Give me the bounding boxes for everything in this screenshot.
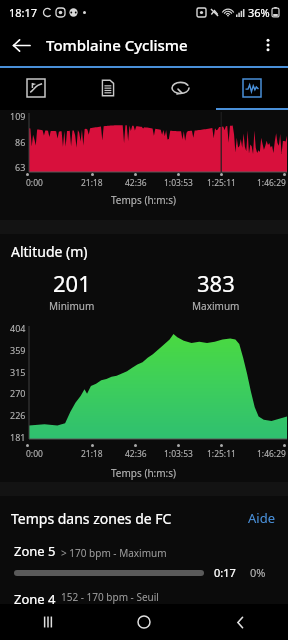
button[interactable]: Back <box>0 24 42 66</box>
staticText: Temps (h:m:s) <box>111 193 177 207</box>
staticText: 1:46:29 <box>257 448 286 460</box>
staticText: 0:00 <box>26 448 43 460</box>
staticText: 21:18 <box>81 177 103 189</box>
button[interactable]: Home <box>96 604 192 640</box>
staticText: 42:36 <box>125 448 147 460</box>
button[interactable]: More options <box>248 25 288 65</box>
staticText: 0:00 <box>26 177 43 189</box>
staticText: 270 <box>10 387 26 399</box>
staticText: 1:03:53 <box>164 448 193 460</box>
staticText: 36% <box>248 5 270 20</box>
button[interactable]: Details <box>72 68 144 108</box>
staticText: 1:03:53 <box>164 177 193 189</box>
staticText: 201 <box>53 268 91 298</box>
staticText: 404 <box>10 322 26 334</box>
button[interactable]: Back <box>192 604 288 640</box>
staticText: 1:25:11 <box>207 448 236 460</box>
staticText: 21:18 <box>81 448 103 460</box>
button[interactable]: Aide <box>246 507 277 529</box>
staticText: 18:17 <box>9 5 38 20</box>
staticText: 383 <box>197 268 235 298</box>
button[interactable]: Charts <box>216 68 288 108</box>
staticText: 86 <box>15 136 26 148</box>
staticText: Aide <box>248 509 275 527</box>
staticText: 359 <box>10 344 26 356</box>
staticText: Temps (h:m:s) <box>111 466 177 480</box>
staticText: 0% <box>250 565 266 580</box>
button[interactable]: Laps <box>144 68 216 108</box>
staticText: 315 <box>10 366 26 378</box>
staticText: 1:46:29 <box>257 177 286 189</box>
staticText: Maximum <box>192 299 240 313</box>
staticText: 1:25:11 <box>207 177 236 189</box>
staticText: 152 - 170 bpm - Seuil <box>61 590 159 604</box>
button[interactable]: Zone 4 <box>0 590 288 604</box>
button[interactable]: Zone 5 <box>0 542 288 580</box>
staticText: 0:17 <box>214 565 236 580</box>
staticText: 226 <box>10 409 26 421</box>
staticText: Tomblaine Cyclisme <box>46 35 188 55</box>
staticText: Zone 5 <box>14 542 56 560</box>
staticText: Altitude (m) <box>11 242 88 261</box>
staticText: Zone 4 <box>14 590 56 604</box>
staticText: > 170 bpm - Maximum <box>61 546 167 560</box>
staticText: 181 <box>10 431 26 443</box>
staticText: 42:36 <box>125 177 147 189</box>
staticText: Minimum <box>49 299 95 313</box>
button[interactable]: Map <box>0 68 72 108</box>
button[interactable]: Recents <box>0 604 96 640</box>
staticText: 109 <box>10 110 26 122</box>
staticText: Temps dans zones de FC <box>11 509 172 528</box>
staticText: 63 <box>15 161 26 173</box>
